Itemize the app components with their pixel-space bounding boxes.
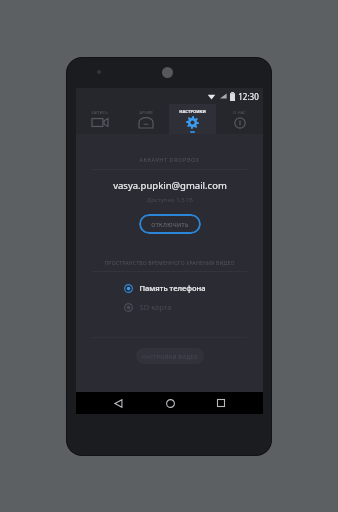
staticText: vasya.pupkin@gmail.com xyxy=(113,179,227,192)
button[interactable]: SD карта xyxy=(124,301,216,313)
button[interactable]: АРХИВ xyxy=(122,104,169,134)
staticText: НАСТРОЙКИ ВИДЕО xyxy=(142,353,198,360)
button[interactable]: Recents xyxy=(211,393,231,413)
staticText: SD карта xyxy=(139,302,172,312)
staticText: ПРОСТРАНСТВО ВРЕМЕННОГО ХРАНЕНИЯ ВИДЕО xyxy=(104,260,235,267)
staticText: Доступно 1.5 ГБ xyxy=(147,196,193,204)
other: О программе xyxy=(234,117,246,129)
button[interactable]: ОТКЛЮЧИТЬ xyxy=(139,214,201,234)
staticText: АРХИВ xyxy=(139,110,153,116)
button[interactable]: НАСТРОЙКИ ВИДЕО xyxy=(136,348,204,364)
button[interactable]: Память телефона xyxy=(124,282,216,294)
button[interactable]: ЗАПИСЬ xyxy=(76,104,122,134)
staticText: АККАУНТ DROPBOX xyxy=(139,156,200,164)
other: Запись xyxy=(92,117,108,128)
staticText: ОТКЛЮЧИТЬ xyxy=(151,221,189,228)
button[interactable]: О НАС xyxy=(216,104,263,134)
other: Настройки xyxy=(186,116,199,129)
staticText: ЗАПИСЬ xyxy=(91,110,108,116)
staticText: О НАС xyxy=(233,110,246,116)
other: Архив xyxy=(139,117,153,128)
staticText: НАСТРОЙКИ xyxy=(179,109,206,115)
button[interactable]: Back xyxy=(108,393,128,413)
staticText: 12:30 xyxy=(238,91,259,102)
button[interactable]: НАСТРОЙКИ xyxy=(169,104,216,134)
button[interactable]: Home xyxy=(160,393,180,413)
staticText: Память телефона xyxy=(139,283,206,293)
